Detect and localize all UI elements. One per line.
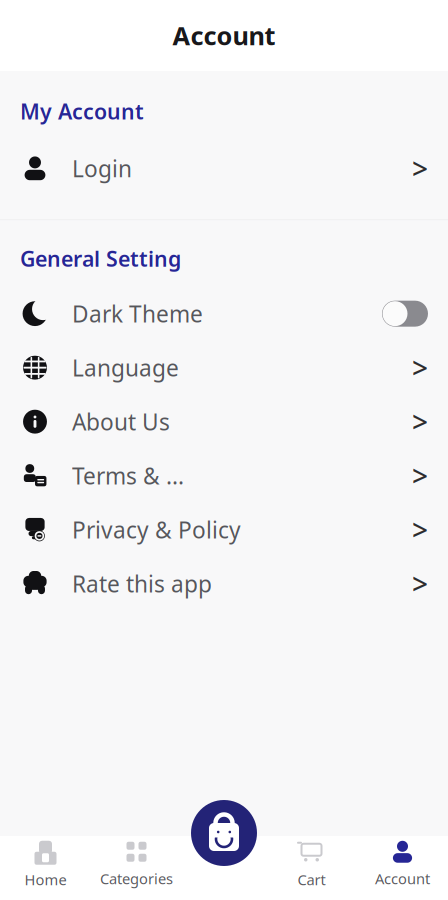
staticText: My Account bbox=[20, 97, 144, 125]
staticText: Rate this app bbox=[72, 569, 212, 599]
button[interactable]: Language bbox=[0, 341, 448, 395]
button[interactable]: Rate this app bbox=[0, 557, 448, 611]
staticText: > bbox=[412, 349, 428, 386]
staticText: > bbox=[412, 457, 428, 494]
staticText: > bbox=[412, 565, 428, 602]
staticText: Home bbox=[24, 870, 66, 889]
button[interactable]: About Us bbox=[0, 395, 448, 449]
staticText: > bbox=[412, 403, 428, 440]
staticText: > bbox=[412, 150, 428, 187]
button[interactable]: Account bbox=[357, 834, 448, 894]
staticText: About Us bbox=[72, 407, 170, 437]
staticText: Language bbox=[72, 353, 179, 383]
staticText: Privacy & Policy bbox=[72, 515, 241, 545]
button[interactable]: Privacy & Policy bbox=[0, 503, 448, 557]
staticText: Terms & ... bbox=[72, 461, 184, 491]
staticText: > bbox=[412, 511, 428, 548]
staticText: Categories bbox=[100, 869, 173, 888]
button[interactable]: Cart bbox=[266, 833, 357, 895]
button[interactable]: Shop bbox=[191, 800, 257, 866]
button[interactable]: Dark Theme toggle bbox=[382, 300, 428, 328]
button[interactable]: Categories bbox=[91, 834, 182, 894]
button[interactable]: Terms & ... bbox=[0, 449, 448, 503]
staticText: Account bbox=[172, 19, 275, 52]
staticText: General Setting bbox=[20, 244, 181, 273]
button[interactable]: Login bbox=[0, 141, 448, 195]
staticText: Login bbox=[72, 153, 132, 183]
staticText: Dark Theme bbox=[72, 299, 203, 329]
button[interactable]: Dark Theme bbox=[0, 287, 448, 341]
staticText: Account bbox=[375, 869, 430, 888]
staticText: Cart bbox=[297, 870, 325, 889]
button[interactable]: Home bbox=[0, 833, 91, 895]
